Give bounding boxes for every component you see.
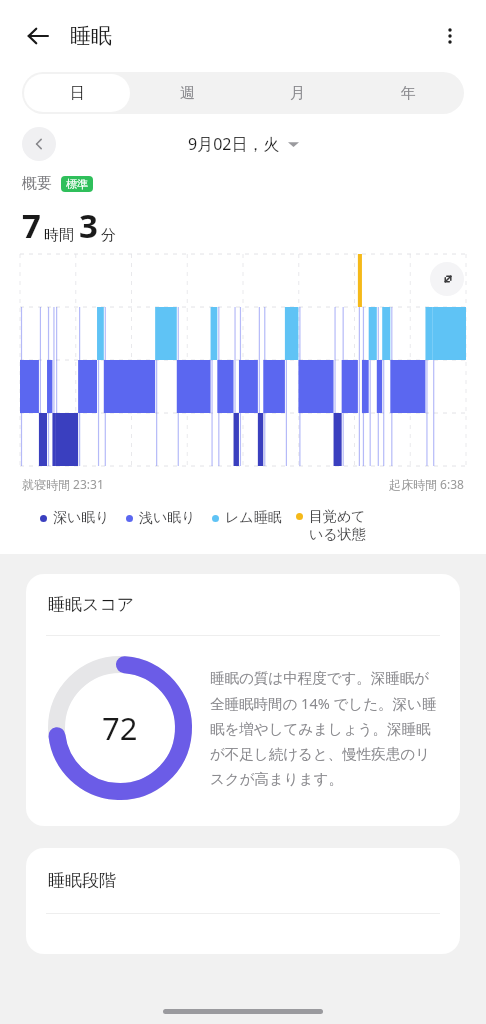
button[interactable]: Back [14,12,62,60]
staticText: レム睡眠 [225,509,282,527]
staticText: 深い眠り [53,509,110,527]
staticText: 72 [102,707,138,749]
button[interactable]: 年 [355,74,462,112]
staticText: 就寝時間 23:31 [22,476,104,492]
staticText: 3 [79,203,98,248]
staticText: 睡眠の質は中程度です。深睡眠が全睡眠時間の 14% でした。深い睡眠を増やしてみ… [210,669,442,788]
staticText: 週 [180,84,195,103]
staticText: 7 [22,203,41,248]
button[interactable]: 9月02日，火 [188,133,299,155]
button[interactable]: More options [428,14,472,58]
button[interactable]: 月 [244,74,351,112]
button[interactable]: 日 [24,74,130,112]
staticText: 浅い眠り [139,509,196,527]
staticText: 概要 [22,174,52,193]
staticText: 起床時間 6:38 [389,476,464,492]
button[interactable]: 睡眠スコア [26,574,460,826]
button[interactable]: Expand chart [430,262,464,296]
staticText: 月 [290,84,305,103]
staticText: 分 [101,226,116,245]
button[interactable]: 睡眠段階 [26,848,460,954]
staticText: いる状態 [309,526,366,544]
staticText: 睡眠段階 [48,870,116,891]
staticText: 標準 [66,177,88,191]
staticText: 時間 [44,226,74,245]
staticText: 日 [70,84,85,103]
staticText: 睡眠 [70,23,112,49]
button[interactable]: Previous day [22,127,56,161]
staticText: 9月02日，火 [188,133,280,155]
staticText: 睡眠スコア [48,594,135,615]
staticText: 目覚めて [309,508,366,526]
button[interactable]: 週 [134,74,240,112]
staticText: 年 [401,84,416,103]
